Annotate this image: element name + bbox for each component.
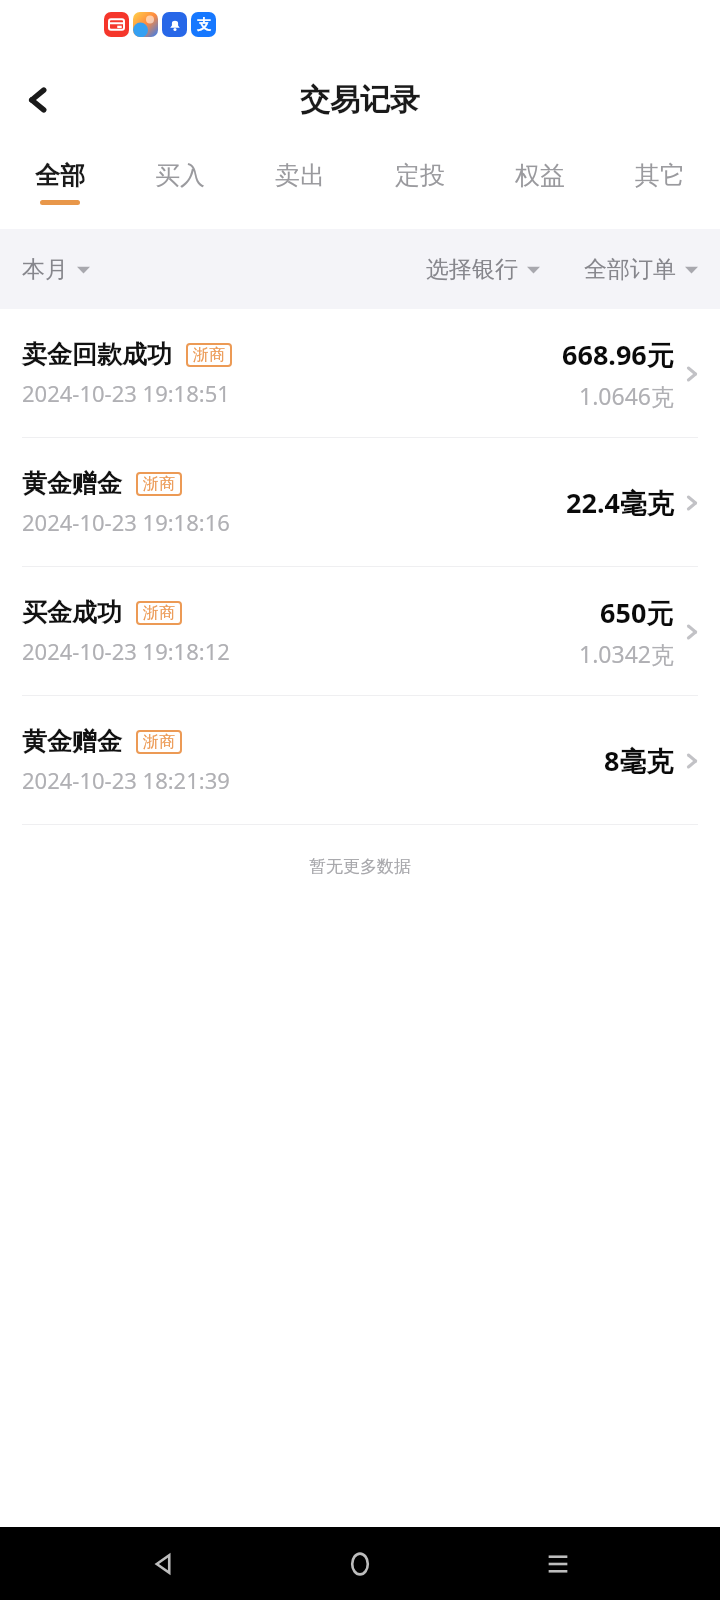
button[interactable]: 全部 <box>0 147 120 229</box>
button[interactable]: 权益 <box>480 147 600 229</box>
button[interactable]: 全部订单 <box>584 249 698 290</box>
staticText: 选择银行 <box>426 255 518 284</box>
staticText: 买入 <box>155 160 205 191</box>
staticText: 2024-10-23 19:18:12 <box>22 636 230 666</box>
staticText: 浙商 <box>143 732 175 752</box>
staticText: 浙商 <box>143 603 175 623</box>
button[interactable]: 选择银行 <box>426 249 540 290</box>
button[interactable]: Back <box>8 70 68 130</box>
button[interactable]: 本月 <box>22 249 90 290</box>
button[interactable]: 卖出 <box>240 147 360 229</box>
staticText: 定投 <box>395 160 445 191</box>
staticText: 668.96元 <box>562 336 674 373</box>
staticText: 买金成功 <box>22 597 122 628</box>
staticText: 8毫克 <box>604 742 674 779</box>
button[interactable]: 定投 <box>360 147 480 229</box>
staticText: 浙商 <box>143 474 175 494</box>
staticText: 650元 <box>600 594 674 631</box>
staticText: 黄金赠金 <box>22 726 122 757</box>
staticText: 其它 <box>635 160 685 191</box>
staticText: 2024-10-23 19:18:51 <box>22 378 230 408</box>
button[interactable]: 买入 <box>120 147 240 229</box>
button[interactable]: 黄金赠金 <box>0 438 720 566</box>
staticText: 卖金回款成功 <box>22 339 172 370</box>
staticText: 1.0342克 <box>579 638 674 669</box>
staticText: 黄金赠金 <box>22 468 122 499</box>
button[interactable]: Recent apps <box>523 1529 593 1599</box>
staticText: 22.4毫克 <box>566 484 674 521</box>
staticText: 浙商 <box>193 345 225 365</box>
staticText: 支 <box>197 16 211 34</box>
button[interactable]: Home <box>325 1529 395 1599</box>
staticText: 本月 <box>22 255 68 284</box>
staticText: 权益 <box>515 160 565 191</box>
button[interactable]: Back <box>128 1529 198 1599</box>
button[interactable]: 卖金回款成功 <box>0 309 720 437</box>
staticText: 全部订单 <box>584 255 676 284</box>
staticText: 全部 <box>35 160 85 191</box>
staticText: 2024-10-23 19:18:16 <box>22 507 230 537</box>
staticText: 1.0646克 <box>579 380 674 411</box>
button[interactable]: 黄金赠金 <box>0 696 720 824</box>
staticText: 暂无更多数据 <box>309 856 411 877</box>
staticText: 卖出 <box>275 160 325 191</box>
staticText: 2024-10-23 18:21:39 <box>22 765 230 795</box>
staticText: 交易记录 <box>300 81 420 119</box>
button[interactable]: 其它 <box>600 147 720 229</box>
button[interactable]: 买金成功 <box>0 567 720 695</box>
